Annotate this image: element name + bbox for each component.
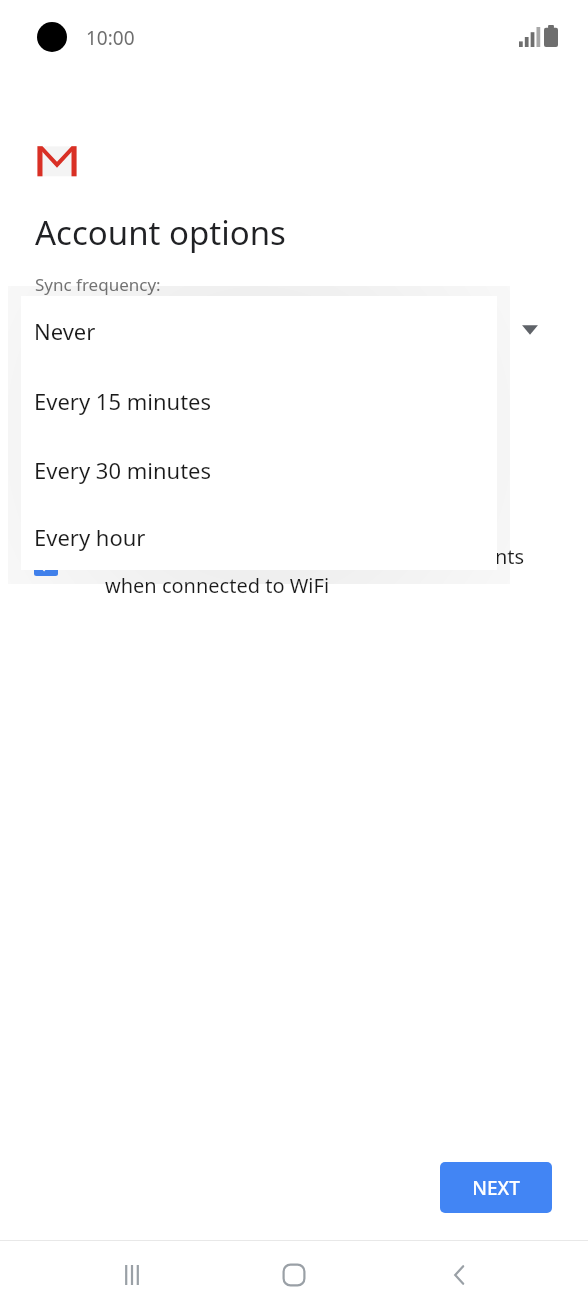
staticText: Account options: [35, 210, 286, 255]
button[interactable]: Recent apps: [112, 1255, 152, 1295]
button[interactable]: Every 15 minutes: [21, 366, 497, 435]
staticText: when connected to WiFi: [105, 572, 330, 599]
staticText: nts: [495, 543, 525, 570]
button[interactable]: NEXT: [440, 1162, 552, 1213]
button[interactable]: Open sync frequency dropdown: [518, 318, 542, 342]
staticText: 10:00: [86, 25, 135, 51]
button[interactable]: Never: [21, 296, 497, 366]
staticText: Sync frequency:: [35, 273, 161, 296]
button[interactable]: Download attachments when connected to W…: [34, 552, 58, 576]
button[interactable]: Every hour: [21, 504, 497, 570]
staticText: Every 30 minutes: [34, 455, 212, 485]
staticText: Every 15 minutes: [34, 386, 212, 416]
staticText: NEXT: [472, 1175, 520, 1201]
staticText: Never: [34, 316, 96, 346]
staticText: Every hour: [34, 522, 146, 552]
button[interactable]: Home: [274, 1255, 314, 1295]
button[interactable]: Back: [440, 1255, 480, 1295]
button[interactable]: Every 30 minutes: [21, 435, 497, 504]
